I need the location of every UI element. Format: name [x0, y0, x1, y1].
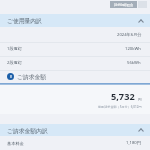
button[interactable]: ご請求金額内訳: [0, 124, 150, 136]
staticText: ¥: [10, 74, 12, 79]
button[interactable]: ¥: [0, 70, 150, 83]
button[interactable]: ご使用量内訳: [0, 14, 150, 27]
staticText: 前回請求金額（5月分）6,012円: [98, 105, 142, 109]
staticText: 5,732: [111, 90, 135, 103]
button[interactable]: 基本料金: [0, 136, 150, 150]
staticText: 請求明細照会: [114, 3, 134, 7]
staticText: 円: [138, 98, 142, 103]
staticText: 2024年6月分: [117, 32, 142, 38]
staticText: ご使用量内訳: [7, 17, 42, 24]
staticText: 1段電灯: [7, 46, 22, 52]
staticText: 120kWh: [125, 46, 141, 52]
staticText: ご請求金額: [17, 73, 47, 80]
staticText: 1,180円: [126, 140, 141, 146]
staticText: ご請求金額内訳: [7, 127, 48, 134]
staticText: 基本料金: [7, 141, 24, 146]
staticText: 2段電灯: [7, 60, 22, 66]
button[interactable]: 請求明細照会: [110, 1, 137, 8]
button[interactable]: 2段電灯: [0, 56, 150, 70]
staticText: 56kWh: [127, 60, 141, 66]
button[interactable]: 1段電灯: [0, 42, 150, 56]
